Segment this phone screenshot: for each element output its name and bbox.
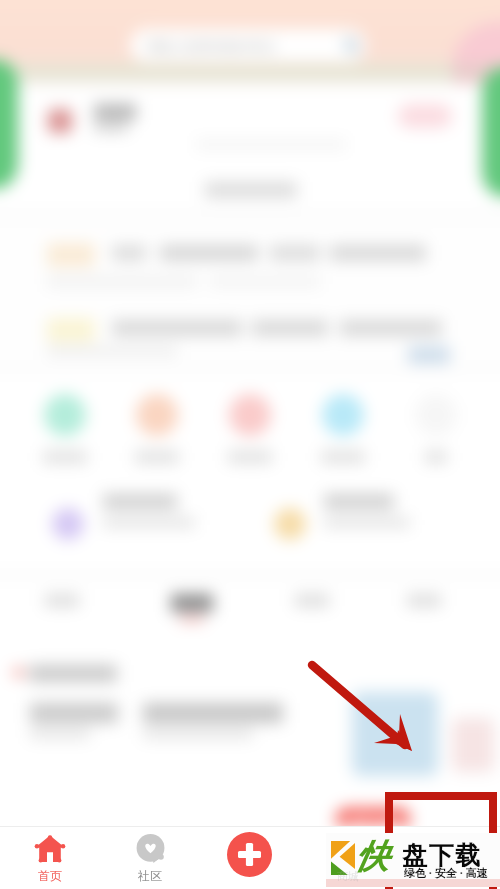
button[interactable]: 社区: [120, 835, 180, 887]
button[interactable]: [30, 594, 94, 640]
button[interactable]: [160, 594, 224, 640]
staticText: 盘下载: [402, 840, 482, 871]
button[interactable]: 买手日抢: [336, 808, 410, 832]
button[interactable]: 发布: [227, 832, 272, 877]
staticText: 买手日抢: [347, 812, 399, 828]
staticText: 快: [355, 836, 388, 878]
button[interactable]: [392, 594, 456, 640]
button[interactable]: [399, 394, 473, 463]
staticText: 绿色 · 安全 · 高速: [404, 865, 488, 880]
button[interactable]: 首页: [20, 835, 80, 887]
staticText: 首页: [38, 868, 62, 883]
button[interactable]: [40, 488, 210, 544]
button[interactable]: [262, 488, 432, 544]
button[interactable]: [398, 104, 452, 128]
button[interactable]: [280, 594, 344, 640]
staticText: 社区: [138, 868, 162, 883]
button[interactable]: [213, 394, 287, 463]
button[interactable]: [306, 394, 380, 463]
staticText: 商城: [337, 869, 359, 883]
button[interactable]: [120, 394, 194, 463]
button[interactable]: [28, 394, 102, 463]
button[interactable]: 请输入您要搜索的商品: [130, 29, 366, 62]
